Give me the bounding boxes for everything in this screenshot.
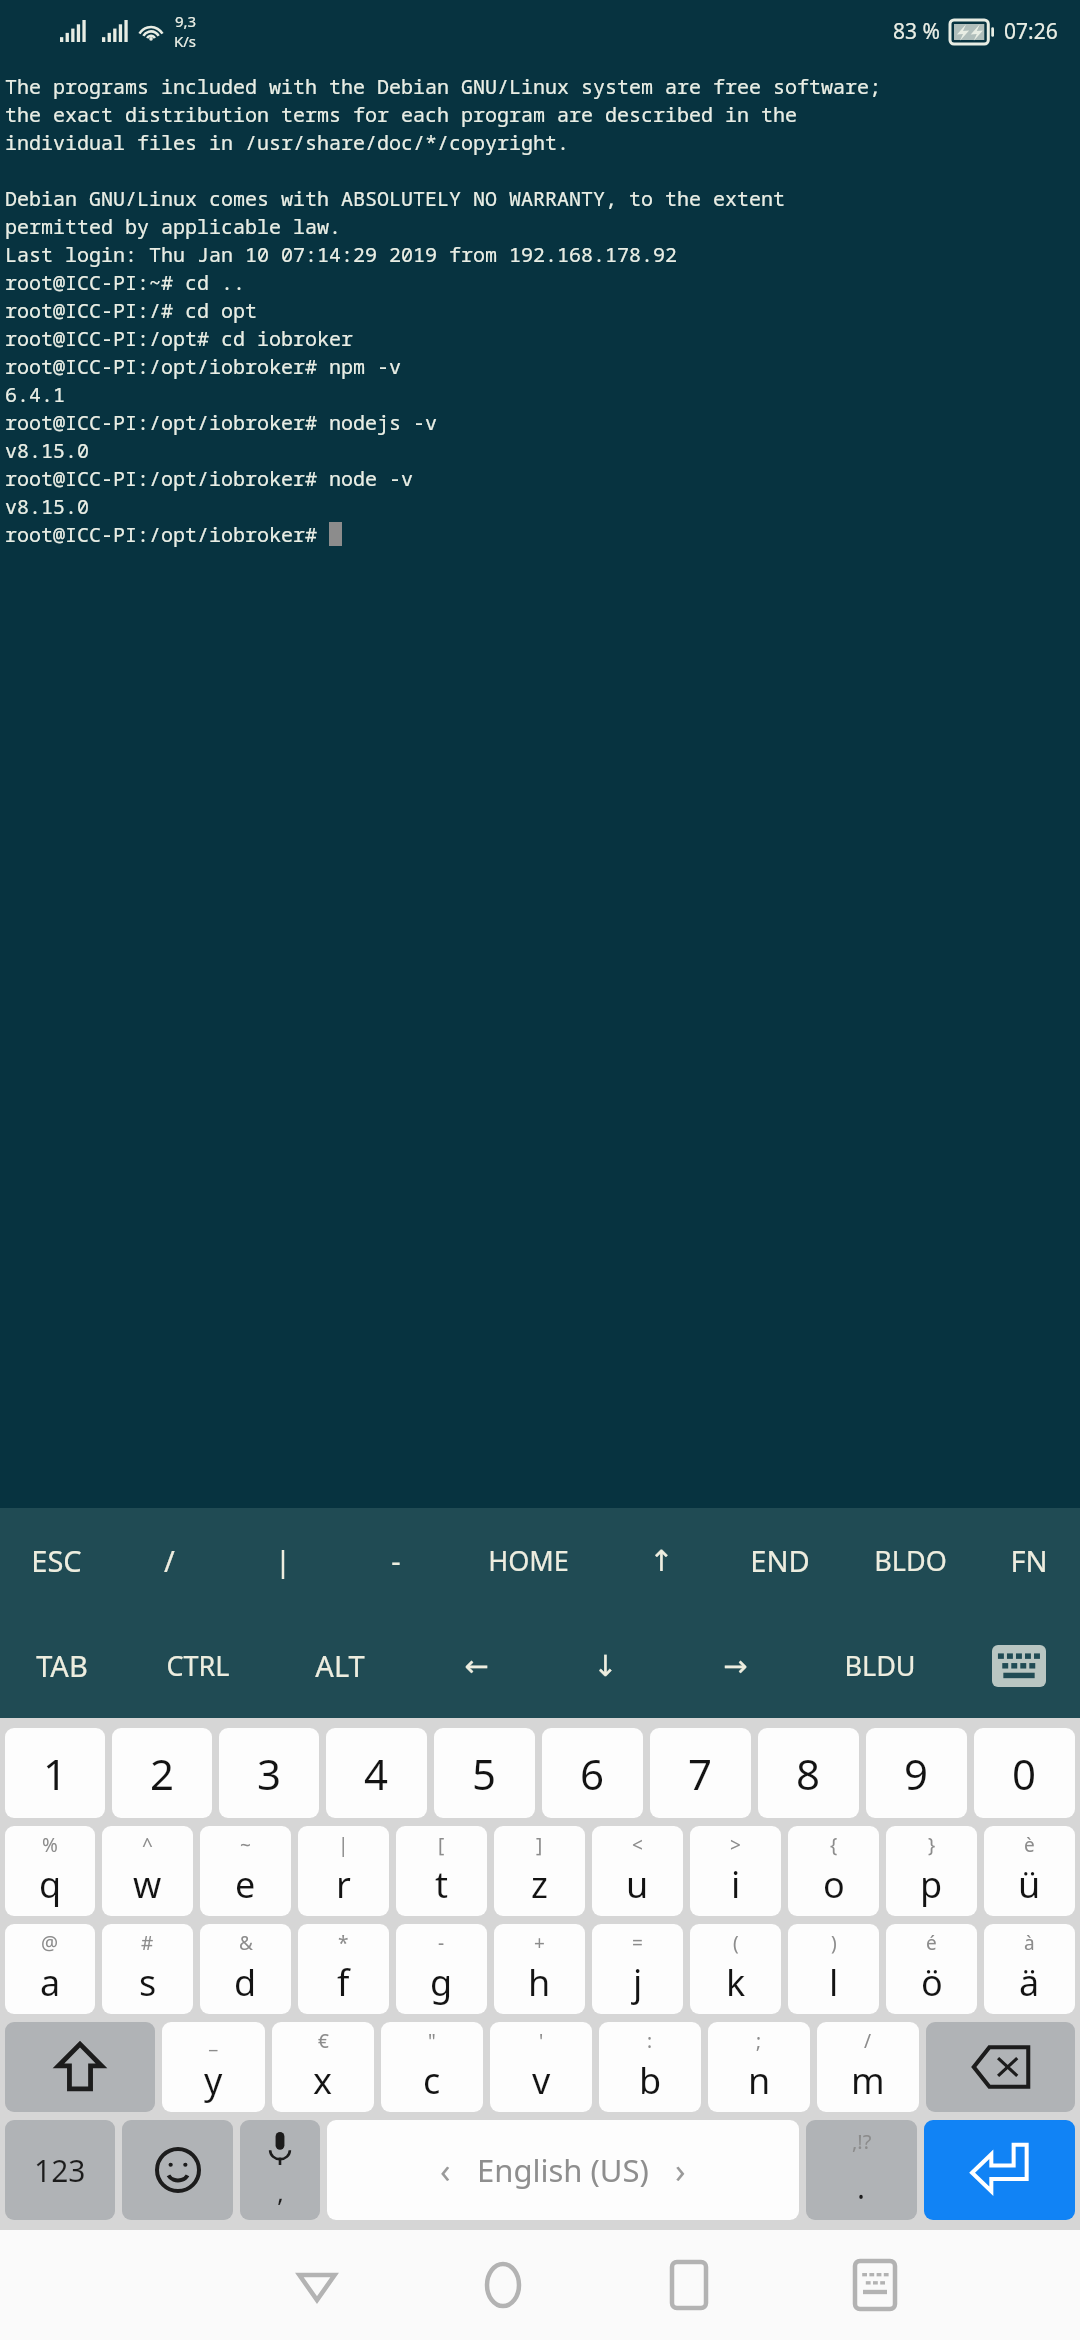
staticText: } xyxy=(928,1832,936,1858)
staticText: q xyxy=(39,1860,62,1909)
button[interactable]: : xyxy=(599,2022,701,2112)
button[interactable]: @ xyxy=(5,1924,95,2014)
button[interactable]: 0 xyxy=(974,1728,1075,1818)
staticText: l xyxy=(829,1958,839,2007)
button[interactable]: Voice input xyxy=(240,2120,320,2220)
staticText: € xyxy=(318,2028,329,2054)
staticText: @ xyxy=(41,1930,59,1956)
staticText: root@ICC-PI:/# cd opt xyxy=(5,297,257,324)
button[interactable]: | xyxy=(226,1508,339,1613)
button[interactable]: Hide keyboard xyxy=(957,1613,1080,1718)
button[interactable]: CTRL xyxy=(124,1613,272,1718)
button[interactable]: é xyxy=(886,1924,977,2014)
button[interactable]: END xyxy=(718,1508,842,1613)
staticText: Last login: Thu Jan 10 07:14:29 2019 fro… xyxy=(5,241,677,268)
button[interactable]: 1 xyxy=(5,1728,105,1818)
staticText: individual files in /usr/share/doc/*/cop… xyxy=(5,129,569,156)
staticText: è xyxy=(1024,1832,1035,1858)
button[interactable]: % xyxy=(5,1826,95,1916)
button[interactable]: - xyxy=(339,1508,452,1613)
button[interactable]: 9 xyxy=(866,1728,967,1818)
staticText: u xyxy=(626,1860,649,1909)
button[interactable]: è xyxy=(984,1826,1075,1916)
button[interactable]: - xyxy=(396,1924,487,2014)
staticText: K/s xyxy=(174,31,197,51)
button[interactable]: # xyxy=(102,1924,193,2014)
staticText: & xyxy=(239,1930,253,1956)
button[interactable]: 4 xyxy=(326,1728,427,1818)
button[interactable]: 8 xyxy=(758,1728,859,1818)
staticText: ; xyxy=(756,2028,762,2054)
staticText: 9,3 xyxy=(175,11,197,31)
button[interactable]: ESC xyxy=(0,1508,113,1613)
staticText: 123 xyxy=(34,2150,86,2191)
staticText: , xyxy=(277,2174,284,2209)
button[interactable]: = xyxy=(592,1924,683,2014)
button[interactable]: ALT xyxy=(272,1613,408,1718)
button[interactable]: ↑ xyxy=(605,1508,718,1613)
button[interactable]: / xyxy=(113,1508,226,1613)
staticText: n xyxy=(748,2056,771,2105)
button[interactable]: BLDU xyxy=(803,1613,957,1718)
button[interactable]: > xyxy=(690,1826,781,1916)
button[interactable]: _ xyxy=(162,2022,265,2112)
button[interactable]: 7 xyxy=(650,1728,751,1818)
button[interactable]: ~ xyxy=(200,1826,291,1916)
staticText: The programs included with the Debian GN… xyxy=(5,73,881,100)
button[interactable]: Emoji xyxy=(122,2120,233,2220)
staticText: 6 xyxy=(580,1745,605,1802)
staticText: j xyxy=(633,1958,643,2007)
staticText: f xyxy=(337,1958,350,2007)
button[interactable]: HOME xyxy=(452,1508,605,1613)
button[interactable]: FN xyxy=(978,1508,1080,1613)
button[interactable]: Back xyxy=(224,2230,410,2340)
staticText: . xyxy=(857,2167,866,2208)
button[interactable]: à xyxy=(984,1924,1075,2014)
staticText: ü xyxy=(1018,1860,1041,1909)
staticText: ' xyxy=(539,2028,544,2054)
button[interactable]: ‹ xyxy=(327,2120,799,2220)
button[interactable]: ,!? xyxy=(806,2120,917,2220)
button[interactable]: & xyxy=(200,1924,291,2014)
staticText: root@ICC-PI:/opt/iobroker# node -v xyxy=(5,465,413,492)
staticText: 9 xyxy=(904,1745,929,1802)
button[interactable]: Shift xyxy=(5,2022,155,2112)
button[interactable]: ↓ xyxy=(544,1613,667,1718)
button[interactable]: " xyxy=(381,2022,483,2112)
button[interactable]: [ xyxy=(396,1826,487,1916)
button[interactable]: Backspace xyxy=(926,2022,1075,2112)
button[interactable]: BLDO xyxy=(842,1508,978,1613)
button[interactable]: ← xyxy=(408,1613,544,1718)
button[interactable]: 3 xyxy=(219,1728,319,1818)
button[interactable]: 5 xyxy=(434,1728,535,1818)
button[interactable]: ] xyxy=(494,1826,585,1916)
button[interactable]: ^ xyxy=(102,1826,193,1916)
button[interactable]: Recents xyxy=(596,2230,782,2340)
staticText: é xyxy=(926,1930,937,1956)
button[interactable]: } xyxy=(886,1826,977,1916)
staticText: * xyxy=(338,1930,349,1956)
button[interactable]: { xyxy=(788,1826,879,1916)
button[interactable]: € xyxy=(272,2022,374,2112)
button[interactable]: 2 xyxy=(112,1728,212,1818)
button[interactable]: ) xyxy=(788,1924,879,2014)
button[interactable]: / xyxy=(817,2022,919,2112)
staticText: { xyxy=(830,1832,838,1858)
button[interactable]: ; xyxy=(708,2022,810,2112)
button[interactable]: + xyxy=(494,1924,585,2014)
staticText: ( xyxy=(733,1930,739,1956)
button[interactable]: Enter xyxy=(924,2120,1075,2220)
button[interactable]: ' xyxy=(490,2022,592,2112)
button[interactable]: TAB xyxy=(0,1613,124,1718)
button[interactable]: < xyxy=(592,1826,683,1916)
button[interactable]: * xyxy=(298,1924,389,2014)
button[interactable]: 123 xyxy=(5,2120,115,2220)
button[interactable]: → xyxy=(667,1613,803,1718)
button[interactable]: Home xyxy=(410,2230,596,2340)
button[interactable]: ( xyxy=(690,1924,781,2014)
button[interactable]: Hide keyboard xyxy=(782,2230,968,2340)
staticText: - xyxy=(391,1541,401,1580)
button[interactable]: 6 xyxy=(542,1728,643,1818)
staticText: root@ICC-PI:/opt# cd iobroker xyxy=(5,325,353,352)
button[interactable]: | xyxy=(298,1826,389,1916)
